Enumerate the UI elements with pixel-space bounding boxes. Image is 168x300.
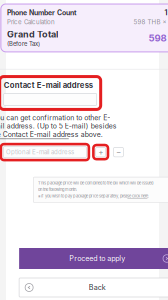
staticText: Proceed to apply: [69, 254, 125, 263]
staticText: 598 THB × 1 items: [133, 18, 168, 26]
staticText: Phone Number Count: [7, 8, 77, 17]
staticText: Back: [89, 283, 106, 292]
staticText: −: [116, 147, 121, 157]
staticText: Grand Total: [7, 29, 58, 40]
button[interactable]: Remove e-mail address: [113, 147, 123, 157]
staticText: (Before Tax): [7, 40, 40, 47]
staticText: the Contact E-mail address above.: [0, 130, 103, 139]
staticText: You can get confirmation to other E-: [0, 113, 110, 122]
button[interactable]: Add e-mail address: [96, 147, 106, 157]
button[interactable]: Back: [19, 278, 168, 297]
staticText: mail address. (Up to 5 E-mail) besides: [0, 122, 117, 130]
staticText: Price Calculation: [7, 18, 55, 26]
staticText: 1 items: [164, 8, 168, 17]
staticText: ※If you wish to pay package price separa…: [38, 194, 149, 198]
staticText: 598 THB: [148, 32, 168, 44]
staticText: on the following month.: [38, 187, 77, 192]
staticText: Contact E-mail address: [4, 81, 93, 90]
button[interactable]: Proceed to apply: [19, 248, 168, 269]
staticText: Optional E-mail address: [6, 148, 74, 156]
staticText: +: [98, 147, 103, 157]
staticText: This package price will be combined to t…: [38, 181, 153, 185]
